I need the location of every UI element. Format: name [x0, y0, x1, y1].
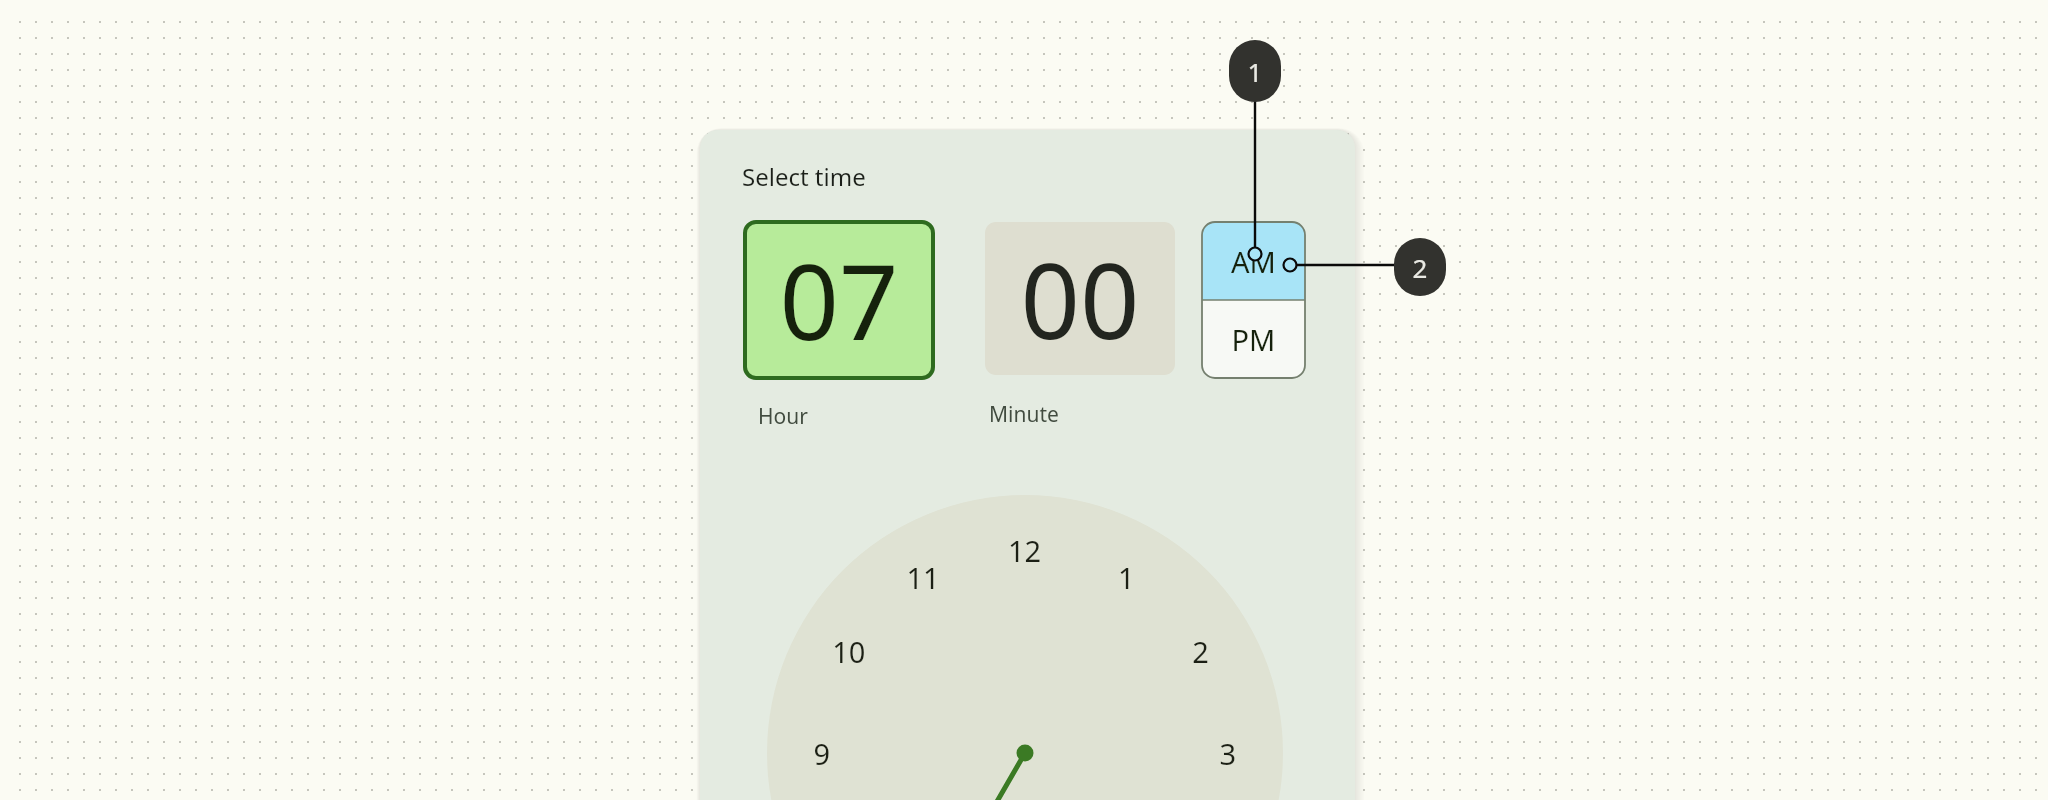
button[interactable]: Clock dial, select hour	[767, 495, 1283, 800]
button[interactable]: Hour 07	[745, 222, 933, 378]
button[interactable]: Minute 00	[985, 222, 1175, 378]
button[interactable]: PM	[1202, 300, 1305, 378]
button[interactable]: AM	[1202, 222, 1305, 300]
